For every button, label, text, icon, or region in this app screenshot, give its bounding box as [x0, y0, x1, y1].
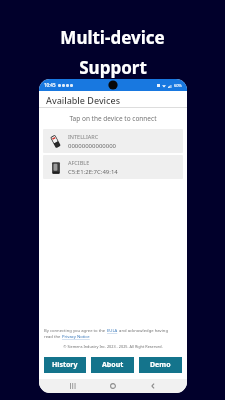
button[interactable]: Back — [147, 380, 159, 392]
staticText: Demo — [150, 360, 171, 370]
staticText: AFCIBLE — [68, 159, 90, 166]
staticText: INTELLIARC — [68, 133, 99, 140]
button[interactable]: Privacy Notice — [62, 334, 90, 340]
staticText: History — [52, 360, 78, 370]
staticText: 60% — [174, 83, 182, 88]
staticText: 10:45 — [44, 82, 56, 88]
staticText: Multi-device — [60, 26, 165, 49]
button[interactable]: INTELLIARC — [43, 129, 183, 153]
button[interactable]: Recent apps — [67, 380, 79, 392]
staticText: Support — [79, 56, 147, 79]
staticText: C5:E1:2E:7C:49:14 — [68, 168, 118, 176]
staticText: 00000000000000 — [68, 142, 117, 150]
staticText: and acknowledge having — [118, 328, 168, 334]
button[interactable]: Demo — [139, 357, 182, 373]
staticText: By connecting you agree to the — [44, 328, 107, 334]
staticText: © Siemens Industry Inc. 2023 - 2025. All… — [44, 344, 182, 349]
staticText: read the — [44, 334, 62, 340]
button[interactable]: History — [44, 357, 86, 373]
button[interactable]: Home — [107, 380, 119, 392]
button[interactable]: EULA — [107, 328, 118, 334]
staticText: Available Devices — [46, 94, 121, 106]
button[interactable]: AFCIBLE — [43, 155, 183, 179]
button[interactable]: About — [91, 357, 134, 373]
staticText: About — [102, 360, 124, 370]
staticText: Tap on the device to connect — [39, 114, 187, 123]
